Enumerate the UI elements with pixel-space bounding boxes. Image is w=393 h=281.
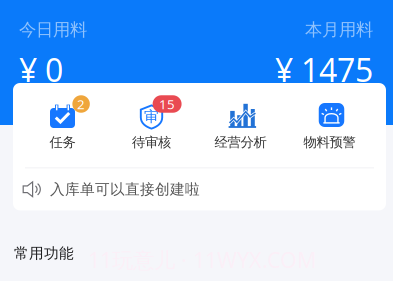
staticText: ¥ 0: [19, 48, 63, 91]
staticText: 物料预警: [303, 134, 355, 150]
button[interactable]: 审: [107, 83, 196, 167]
button[interactable]: 入库单可以直接创建啦: [13, 168, 386, 210]
staticText: 任务: [49, 134, 75, 150]
staticText: 今日用料: [19, 19, 87, 40]
staticText: 常用功能: [14, 244, 74, 262]
staticText: 2: [77, 95, 85, 113]
staticText: 审: [144, 107, 159, 125]
staticText: 待审核: [132, 134, 171, 150]
staticText: 经营分析: [214, 134, 266, 150]
button[interactable]: 2: [18, 83, 107, 167]
button[interactable]: 物料预警: [285, 83, 374, 167]
staticText: 15: [159, 95, 175, 113]
staticText: 本月用料: [305, 19, 373, 40]
staticText: 入库单可以直接创建啦: [50, 180, 200, 198]
button[interactable]: 经营分析: [196, 83, 285, 167]
staticText: ¥ 1475: [275, 48, 373, 91]
